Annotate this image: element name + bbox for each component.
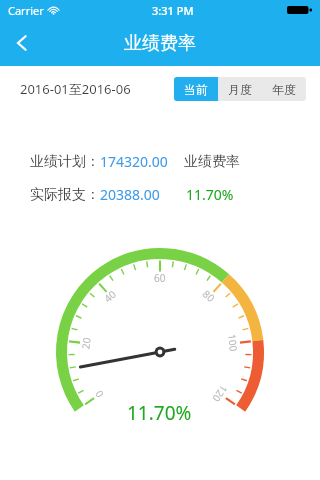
button[interactable]: 当前 [174,77,218,101]
staticText: 业绩费率 [124,32,196,55]
button[interactable]: Back [0,20,44,66]
button[interactable]: 年度 [262,77,306,101]
staticText: 当前 [184,82,208,97]
staticText: 11.70% [127,400,192,426]
staticText: 120 [209,383,231,405]
staticText: 实际报支： [30,186,100,204]
staticText: 60 [154,271,166,285]
staticText: 80 [200,287,218,305]
staticText: 业绩费率 [184,153,240,171]
staticText: 月度 [228,82,252,97]
staticText: 20 [78,336,94,350]
staticText: 20388.00 [100,185,160,204]
staticText: 11.70% [186,185,234,204]
staticText: 业绩计划： [30,153,100,171]
staticText: Carrier [8,3,44,18]
button[interactable]: 月度 [218,77,262,101]
staticText: 100 [225,333,241,353]
staticText: 2016-01至2016-06 [20,80,131,98]
staticText: 0 [91,387,106,400]
staticText: 40 [101,287,119,305]
staticText: 174320.00 [100,152,168,171]
staticText: 3:31 PM [152,3,194,18]
staticText: 年度 [272,82,296,97]
